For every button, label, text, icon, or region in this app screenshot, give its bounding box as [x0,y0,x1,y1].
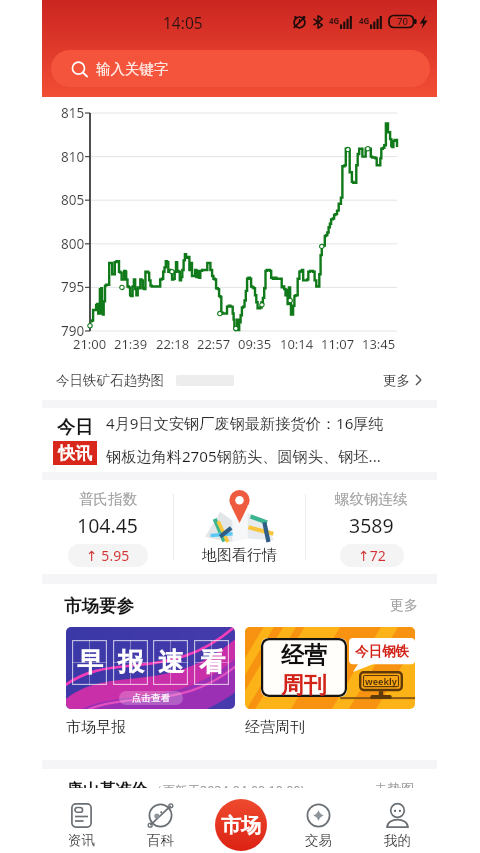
staticText: 4月9日文安钢厂废钢最新接货价：16厚纯 [106,413,384,434]
staticText: 看 [199,646,225,679]
staticText: 3589 [349,512,394,539]
button[interactable]: 螺纹钢连续 [306,480,437,574]
staticText: 今日钢铁 [355,643,409,660]
staticText: 22:18 [156,335,190,353]
staticText: 螺纹钢连续 [335,490,408,508]
button[interactable]: Search [51,50,430,87]
button[interactable]: 经营 [245,627,415,737]
button[interactable]: 交易 [279,788,358,853]
staticText: 早 [77,646,103,679]
staticText: 我的 [384,832,411,849]
staticText: （更新于2024-04-09 10:00) [150,782,305,799]
staticText: 快讯 [58,443,92,464]
staticText: 805 [61,191,85,209]
button[interactable]: 早 [66,627,235,737]
staticText: 104.45 [77,512,138,539]
staticText: 815 [61,104,85,122]
staticText: 13:45 [362,335,396,353]
button[interactable]: 普氏指数 [42,480,173,574]
staticText: 速 [158,646,184,679]
staticText: 周刊 [281,671,327,697]
staticText: 4G [359,15,370,26]
staticText: 经营周刊 [245,718,305,737]
button[interactable]: 地图看行情 [174,480,305,574]
staticText: 今日铁矿石趋势图 [56,372,164,389]
staticText: 走势图 [374,781,415,798]
button[interactable]: 今日铁矿石趋势图 [42,360,437,400]
staticText: 21:39 [114,335,148,353]
staticText: 更多 [383,372,410,389]
button[interactable]: 更多 [390,597,418,615]
staticText: 百科 [147,832,174,849]
button[interactable]: 资讯 [42,788,121,853]
staticText: 资讯 [68,832,95,849]
staticText: 唐山基准价 [67,780,147,799]
staticText: 地图看行情 [202,546,277,565]
staticText: 点击查看 [132,692,170,704]
staticText: 今日 [57,416,93,439]
button[interactable]: 今日 [42,408,437,472]
staticText: 22:57 [197,335,231,353]
staticText: 4G [329,15,340,26]
button[interactable]: 市场 [215,799,267,851]
button[interactable]: 我的 [358,788,437,853]
staticText: 市场 [221,813,261,838]
staticText: 输入关键字 [96,60,169,78]
staticText: 14:05 [163,12,203,33]
staticText: 790 [61,322,85,340]
staticText: 800 [61,235,85,253]
staticText: 市场要参 [64,595,134,617]
button[interactable]: 唐山基准价 [42,769,437,788]
staticText: 11:07 [321,335,355,353]
staticText: 报 [118,646,144,679]
staticText: 交易 [305,832,332,849]
staticText: 795 [61,278,85,296]
staticText: ↑72 [358,546,386,565]
staticText: 经营 [281,641,327,670]
staticText: 钢板边角料2705钢筋头、圆钢头、钢坯... [106,446,381,467]
staticText: 810 [61,148,85,166]
staticText: ↑ 5.95 [86,546,130,565]
staticText: 10:14 [280,335,314,353]
staticText: 普氏指数 [79,490,137,508]
staticText: 09:35 [238,335,272,353]
staticText: 70 [397,15,408,28]
staticText: weekly [365,675,397,687]
button[interactable]: 百科 [121,788,200,853]
staticText: 21:00 [73,335,107,353]
staticText: 市场早报 [66,718,126,737]
